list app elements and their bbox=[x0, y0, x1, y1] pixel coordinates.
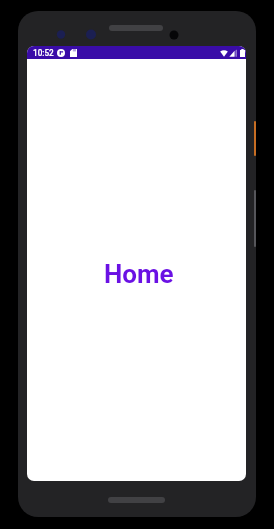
staticText: 10:52 bbox=[33, 48, 54, 58]
button[interactable]: Home bbox=[27, 59, 246, 481]
other: Power button bbox=[254, 121, 256, 156]
staticText: Home bbox=[104, 259, 174, 289]
